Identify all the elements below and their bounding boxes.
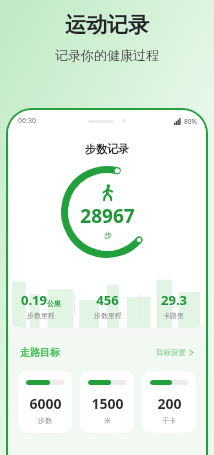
staticText: 走路目标 xyxy=(20,346,60,359)
staticText: 卡路里 xyxy=(163,311,184,320)
button[interactable]: 29.3 xyxy=(141,291,206,320)
staticText: 步 xyxy=(104,230,112,240)
staticText: 456 xyxy=(96,291,119,309)
button[interactable]: 1500 xyxy=(80,371,134,433)
staticText: 目标设置 xyxy=(156,348,186,357)
staticText: 步数里程 xyxy=(27,311,55,320)
staticText: 28967 xyxy=(80,203,135,229)
button[interactable]: 目标设置 xyxy=(156,348,194,357)
staticText: 记录你的健康过程 xyxy=(55,47,159,63)
staticText: 0.19 xyxy=(21,291,47,309)
staticText: 米 xyxy=(104,416,111,425)
button[interactable]: 6000 xyxy=(18,371,72,433)
staticText: 运动记录 xyxy=(65,12,149,38)
button[interactable]: 456 xyxy=(75,291,140,320)
staticText: 80% xyxy=(184,117,197,126)
staticText: 6000 xyxy=(29,394,62,413)
staticText: 步数里程 xyxy=(94,311,122,320)
staticText: 步数记录 xyxy=(85,142,129,156)
staticText: 06:30 xyxy=(18,116,36,126)
button[interactable]: 0.19 xyxy=(8,291,74,320)
button[interactable]: 200 xyxy=(142,371,196,433)
staticText: 1500 xyxy=(91,394,124,413)
staticText: 步数 xyxy=(38,416,52,425)
staticText: 200 xyxy=(157,394,182,413)
staticText: 千卡 xyxy=(162,416,176,425)
staticText: 公里 xyxy=(47,299,61,308)
staticText: 29.3 xyxy=(161,291,187,309)
